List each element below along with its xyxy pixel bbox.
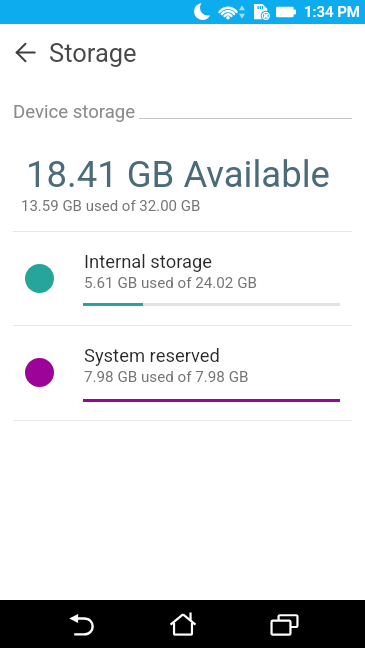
staticText: 1:34 PM — [304, 3, 360, 21]
staticText: Storage — [49, 38, 137, 68]
staticText: System reserved — [84, 345, 220, 367]
staticText: Device storage — [13, 101, 136, 123]
button[interactable]: Recent apps — [244, 600, 325, 648]
button[interactable]: System reserved — [0, 327, 365, 419]
button[interactable]: Back — [41, 600, 122, 648]
button[interactable]: Internal storage — [0, 233, 365, 325]
staticText: 18.41 GB Available — [26, 153, 330, 196]
staticText: 5.61 GB used of 24.02 GB — [84, 274, 257, 292]
button[interactable]: Back — [6, 34, 44, 70]
staticText: Internal storage — [84, 251, 213, 273]
button[interactable]: Home — [142, 600, 223, 648]
staticText: 7.98 GB used of 7.98 GB — [84, 368, 249, 386]
staticText: 13.59 GB used of 32.00 GB — [21, 197, 201, 215]
